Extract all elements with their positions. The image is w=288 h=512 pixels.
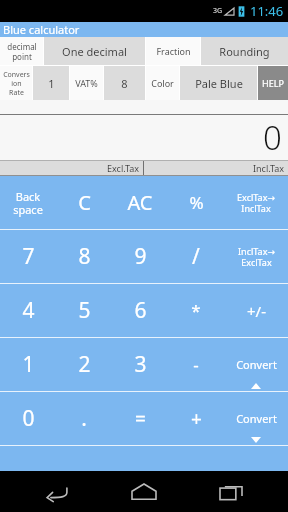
staticText: 8 — [78, 242, 91, 271]
button[interactable]: * — [168, 284, 224, 337]
staticText: decimal point — [7, 41, 37, 62]
button[interactable]: Home — [114, 471, 174, 512]
staticText: 5 — [78, 296, 91, 325]
staticText: Excl.Tax — [107, 162, 140, 174]
staticText: 1 — [48, 76, 55, 91]
button[interactable]: 0 — [0, 115, 288, 160]
staticText: Incl.Tax — [253, 162, 285, 174]
button[interactable]: 0 — [0, 392, 56, 445]
button[interactable]: Convers ion Rate — [0, 66, 32, 100]
button[interactable]: C — [56, 176, 112, 229]
staticText: 4 — [22, 296, 35, 325]
staticText: Pale Blue — [195, 76, 243, 91]
staticText: 3 — [134, 350, 147, 379]
staticText: InclTax→ ExclTax — [238, 245, 275, 268]
button[interactable]: = — [112, 392, 168, 445]
button[interactable]: Excl.Tax — [0, 161, 143, 175]
staticText: 0 — [22, 404, 35, 433]
staticText: +/- — [247, 301, 266, 321]
button[interactable]: / — [168, 230, 224, 283]
staticText: % — [189, 191, 204, 214]
button[interactable]: Rounding — [201, 37, 288, 65]
button[interactable]: InclTax→ ExclTax — [224, 230, 288, 283]
button[interactable]: ExclTax→ InclTax — [224, 176, 288, 229]
staticText: 8 — [121, 76, 128, 91]
staticText: 1 — [22, 350, 35, 379]
staticText: Convers ion Rate — [3, 70, 30, 97]
staticText: AC — [127, 189, 153, 216]
staticText: 7 — [22, 242, 35, 271]
button[interactable]: Color — [146, 66, 179, 100]
staticText: Color — [151, 77, 174, 89]
button[interactable]: % — [168, 176, 224, 229]
button[interactable]: + — [168, 392, 224, 445]
button[interactable]: . — [56, 392, 112, 445]
button[interactable]: Incl.Tax — [144, 161, 288, 175]
staticText: + — [191, 406, 202, 432]
button[interactable]: One decimal — [44, 37, 145, 65]
staticText: - — [193, 353, 199, 376]
staticText: HELP — [262, 77, 284, 89]
staticText: * — [191, 299, 201, 322]
button[interactable]: 1 — [33, 66, 69, 100]
button[interactable]: Back — [27, 471, 87, 512]
staticText: 9 — [134, 242, 147, 271]
button[interactable]: decimal point — [0, 37, 43, 65]
staticText: 6 — [134, 296, 147, 325]
button[interactable]: 3 — [112, 338, 168, 391]
staticText: Back space — [13, 189, 43, 217]
staticText: 0 — [263, 115, 282, 160]
staticText: Rounding — [219, 44, 270, 59]
button[interactable]: 8 — [104, 66, 145, 100]
staticText: One decimal — [62, 44, 127, 59]
staticText: Blue calculator — [3, 22, 80, 37]
button[interactable]: 2 — [56, 338, 112, 391]
button[interactable]: 9 — [112, 230, 168, 283]
staticText: Convert — [236, 357, 277, 372]
button[interactable]: - — [168, 338, 224, 391]
button[interactable]: AC — [112, 176, 168, 229]
button[interactable]: 1 — [0, 338, 56, 391]
button[interactable]: 4 — [0, 284, 56, 337]
button[interactable]: 6 — [112, 284, 168, 337]
button[interactable]: Back space — [0, 176, 56, 229]
staticText: 2 — [78, 350, 91, 379]
button[interactable]: VAT% — [70, 66, 103, 100]
button[interactable]: Recent apps — [201, 471, 261, 512]
button[interactable]: 5 — [56, 284, 112, 337]
staticText: VAT% — [75, 77, 98, 89]
button[interactable]: 7 — [0, 230, 56, 283]
staticText: 3G — [213, 6, 223, 16]
staticText: / — [192, 242, 200, 271]
button[interactable]: 8 — [56, 230, 112, 283]
button[interactable]: Convert — [224, 392, 288, 445]
staticText: 11:46 — [250, 2, 284, 20]
button[interactable]: +/- — [224, 284, 288, 337]
staticText: C — [78, 189, 91, 216]
button[interactable]: Fraction — [146, 37, 200, 65]
staticText: . — [81, 404, 87, 433]
staticText: Fraction — [156, 45, 191, 57]
staticText: ExclTax→ InclTax — [237, 191, 275, 214]
button[interactable]: Pale Blue — [180, 66, 257, 100]
button[interactable]: Convert — [224, 338, 288, 391]
button[interactable]: HELP — [258, 66, 288, 100]
staticText: Convert — [236, 411, 277, 426]
staticText: = — [135, 406, 146, 432]
